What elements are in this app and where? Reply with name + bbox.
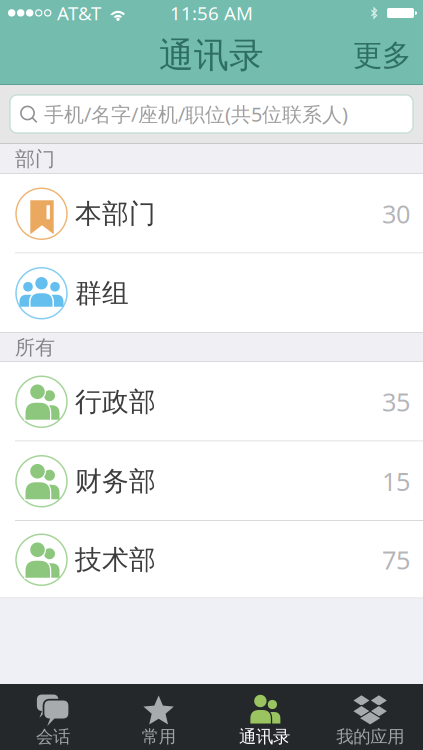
staticText: 会话 (36, 726, 70, 747)
staticText: 常用 (142, 726, 176, 747)
staticText: 部门 (15, 147, 55, 171)
staticText: 群组 (75, 277, 129, 310)
staticText: 15 (382, 464, 410, 498)
button[interactable]: 我的应用 (317, 684, 423, 750)
button[interactable]: 行政部 (0, 362, 423, 441)
staticText: 35 (382, 385, 410, 418)
staticText: 所有 (15, 335, 55, 360)
staticText: 我的应用 (336, 726, 404, 747)
button[interactable]: 本部门 (0, 174, 423, 253)
staticText: 75 (382, 543, 410, 576)
staticText: 行政部 (75, 385, 156, 418)
staticText: 更多 (353, 37, 411, 73)
button[interactable]: 通讯录 (211, 684, 317, 750)
button[interactable]: 常用 (106, 684, 212, 750)
staticText: 技术部 (75, 543, 156, 576)
staticText: 30 (382, 197, 410, 230)
staticText: 11:56 AM (170, 1, 253, 25)
button[interactable]: 群组 (0, 253, 423, 333)
button[interactable]: 技术部 (0, 521, 423, 598)
staticText: 财务部 (75, 465, 156, 498)
staticText: 通讯录 (239, 726, 290, 747)
staticText: 本部门 (75, 197, 156, 230)
button[interactable]: 财务部 (0, 441, 423, 521)
staticText: 通讯录 (159, 34, 264, 77)
button[interactable]: 手机/名字/座机/职位(共5位联系人) (0, 95, 423, 134)
button[interactable]: 会话 (0, 684, 106, 750)
button[interactable]: 更多 (353, 25, 423, 85)
staticText: AT&T (57, 1, 101, 25)
staticText: 手机/名字/座机/职位(共5位联系人) (44, 101, 348, 127)
